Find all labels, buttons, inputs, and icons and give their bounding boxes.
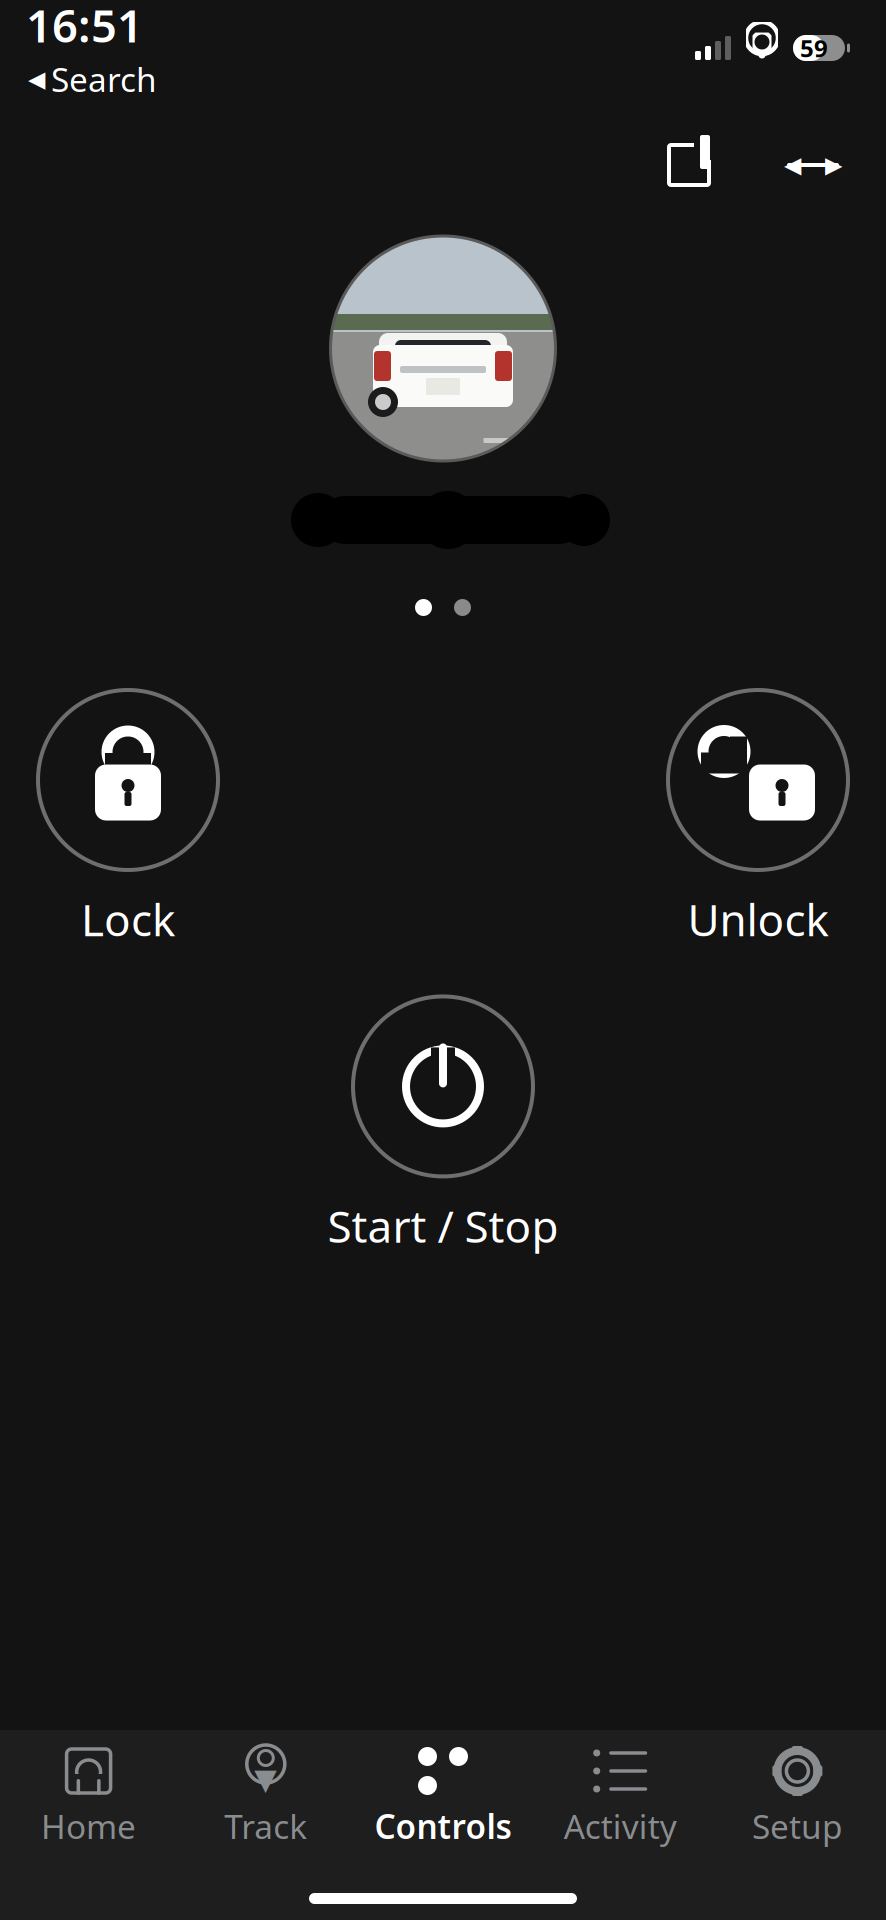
staticText: ◀ — [28, 66, 45, 92]
button[interactable]: Start / Stop — [327, 996, 558, 1255]
staticText: 1 — [293, 481, 327, 559]
button[interactable]: ▼ — [177, 1730, 354, 1858]
staticText: Search — [51, 57, 157, 101]
staticText: Controls — [374, 1804, 511, 1848]
staticText: Start / Stop — [327, 1196, 558, 1255]
button[interactable]: Setup — [709, 1730, 886, 1858]
button[interactable]: Activity — [532, 1730, 709, 1858]
button[interactable]: Controls — [354, 1730, 532, 1858]
button[interactable]: Unlock — [668, 690, 848, 948]
staticText: Lock — [81, 890, 175, 948]
button[interactable]: Swap vehicle — [772, 140, 854, 190]
staticText: ▼ — [254, 1763, 277, 1796]
staticText: Home — [41, 1804, 136, 1848]
button[interactable]: Lock — [38, 690, 218, 948]
staticText: ▶ — [825, 152, 842, 178]
button[interactable]: ◀ — [26, 57, 157, 101]
staticText: 59 — [800, 32, 828, 64]
staticText: 16:51 — [26, 0, 143, 55]
staticText: Activity — [564, 1804, 677, 1848]
button[interactable]: ⌂ — [0, 1730, 177, 1858]
staticText: ◀ — [784, 152, 801, 178]
staticText: Track — [224, 1804, 307, 1848]
button[interactable]: Edit vehicle — [654, 130, 724, 200]
staticText: Unlock — [687, 890, 828, 948]
staticText: Setup — [752, 1804, 843, 1848]
